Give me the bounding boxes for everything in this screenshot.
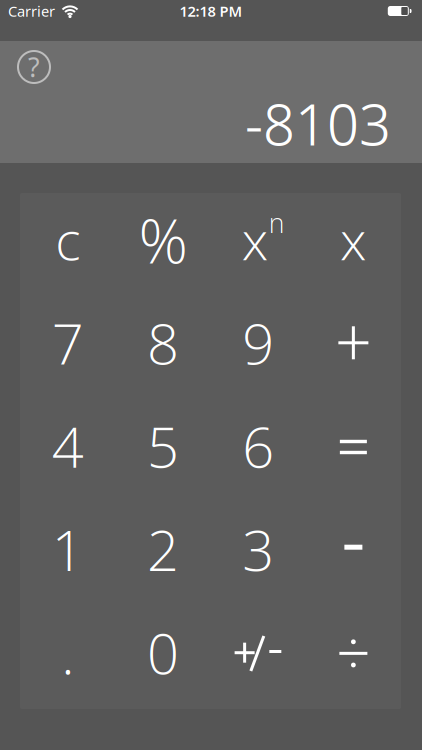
button[interactable]: 5 bbox=[115, 399, 210, 503]
button[interactable]: Add bbox=[306, 296, 401, 399]
button[interactable]: Equals bbox=[306, 399, 401, 503]
staticText: 8 bbox=[147, 306, 179, 380]
staticText: 3 bbox=[242, 512, 274, 586]
staticText: % bbox=[138, 199, 187, 280]
button[interactable]: 2 bbox=[115, 503, 210, 606]
button[interactable]: Divide bbox=[306, 606, 401, 709]
button[interactable]: Plus minus bbox=[210, 606, 306, 709]
button[interactable]: 1 bbox=[20, 503, 115, 606]
staticText: 5 bbox=[147, 409, 179, 483]
staticText: 9 bbox=[242, 306, 274, 380]
staticText: 1 bbox=[52, 512, 84, 586]
staticText: c bbox=[55, 204, 80, 275]
staticText: -8103 bbox=[245, 87, 391, 161]
staticText: 4 bbox=[52, 409, 84, 483]
button[interactable]: % bbox=[115, 193, 210, 296]
staticText: 12:18 PM bbox=[179, 1, 242, 21]
button[interactable]: Subtract bbox=[306, 503, 401, 606]
staticText: n bbox=[269, 205, 285, 240]
staticText: x bbox=[340, 204, 367, 275]
button[interactable]: 4 bbox=[20, 399, 115, 503]
button[interactable]: 6 bbox=[210, 399, 306, 503]
button[interactable]: c bbox=[20, 193, 115, 296]
staticText: 7 bbox=[52, 306, 84, 380]
button[interactable]: Help bbox=[17, 50, 51, 84]
staticText: 6 bbox=[242, 409, 274, 483]
button[interactable]: 0 bbox=[115, 606, 210, 709]
button[interactable]: 3 bbox=[210, 503, 306, 606]
button[interactable]: . bbox=[20, 606, 115, 709]
button[interactable]: x bbox=[306, 193, 401, 296]
button[interactable]: 8 bbox=[115, 296, 210, 399]
button[interactable]: Power bbox=[210, 193, 306, 296]
staticText: x bbox=[242, 204, 269, 275]
button[interactable]: 9 bbox=[210, 296, 306, 399]
staticText: 2 bbox=[147, 512, 179, 586]
staticText: ? bbox=[28, 49, 40, 85]
staticText: Carrier bbox=[8, 1, 55, 21]
staticText: . bbox=[61, 615, 74, 690]
button[interactable]: 7 bbox=[20, 296, 115, 399]
staticText: 0 bbox=[147, 615, 179, 690]
